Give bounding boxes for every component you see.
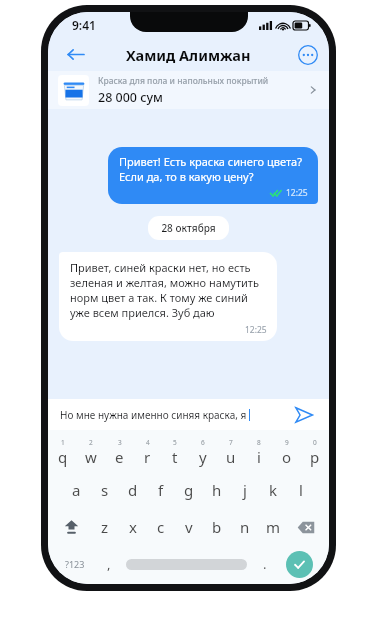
button[interactable]: d <box>119 471 147 508</box>
staticText: f <box>158 480 164 500</box>
button[interactable]: , <box>96 546 121 582</box>
staticText: 2 <box>89 438 93 447</box>
staticText: x <box>129 517 137 537</box>
button[interactable]: 28 октября <box>148 216 229 240</box>
button[interactable]: Enter <box>286 551 313 578</box>
staticText: h <box>212 480 222 500</box>
button[interactable]: s <box>91 471 119 508</box>
button[interactable]: 2 <box>77 434 105 471</box>
staticText: e <box>115 447 124 467</box>
button[interactable]: k <box>259 471 287 508</box>
staticText: w <box>85 447 97 467</box>
button[interactable]: 5 <box>161 434 189 471</box>
button[interactable]: m <box>259 508 287 546</box>
button[interactable]: j <box>231 471 259 508</box>
staticText: 7 <box>229 438 233 447</box>
staticText: Но мне нужна именно синяя краска, я <box>60 408 247 422</box>
button[interactable]: b <box>203 508 231 546</box>
staticText: s <box>101 480 109 500</box>
staticText: 12:25 <box>245 324 267 336</box>
staticText: Привет! Есть краска синего цвета? Если д… <box>119 154 302 184</box>
staticText: 28 000 сум <box>98 89 163 106</box>
button[interactable]: 8 <box>245 434 273 471</box>
button[interactable]: n <box>231 508 259 546</box>
button[interactable]: . <box>252 546 278 582</box>
staticText: n <box>240 517 250 537</box>
staticText: p <box>310 447 320 467</box>
staticText: k <box>269 480 278 500</box>
button[interactable]: Привет! Есть краска синего цвета? Если д… <box>108 147 318 204</box>
button[interactable]: Send <box>291 402 317 428</box>
button[interactable]: ?123 <box>54 546 96 582</box>
staticText: c <box>157 517 165 537</box>
staticText: u <box>226 447 236 467</box>
staticText: q <box>58 447 68 467</box>
button[interactable]: 9 <box>273 434 301 471</box>
staticText: . <box>263 555 267 573</box>
staticText: 1 <box>61 438 65 447</box>
staticText: r <box>144 447 151 467</box>
button[interactable]: 1 <box>48 434 77 471</box>
button[interactable]: c <box>147 508 175 546</box>
button[interactable]: z <box>91 508 119 546</box>
button[interactable]: l <box>287 471 315 508</box>
staticText: t <box>172 447 178 467</box>
staticText: z <box>101 517 109 537</box>
staticText: Привет, синей краски нет, но есть зелена… <box>70 260 267 320</box>
staticText: 8 <box>257 438 261 447</box>
staticText: j <box>243 480 247 500</box>
button[interactable] <box>121 546 252 582</box>
staticText: i <box>257 447 261 467</box>
staticText: 5 <box>173 438 177 447</box>
button[interactable]: Back <box>58 38 92 71</box>
staticText: 9:41 <box>72 17 96 33</box>
staticText: v <box>185 517 193 537</box>
staticText: 4 <box>146 438 150 447</box>
staticText: Хамид Алимжан <box>126 45 251 65</box>
staticText: b <box>212 517 222 537</box>
button[interactable]: 3 <box>105 434 133 471</box>
staticText: g <box>184 480 194 500</box>
button[interactable]: h <box>203 471 231 508</box>
button[interactable]: 6 <box>189 434 217 471</box>
staticText: m <box>266 517 281 537</box>
button[interactable]: Shift <box>52 508 91 546</box>
staticText: 6 <box>201 438 205 447</box>
button[interactable]: g <box>175 471 203 508</box>
button[interactable]: Backspace <box>287 508 325 546</box>
staticText: a <box>72 480 81 500</box>
button[interactable]: More options <box>297 44 319 66</box>
staticText: 12:25 <box>286 187 308 199</box>
button[interactable]: 4 <box>133 434 161 471</box>
button[interactable]: a <box>62 471 91 508</box>
button[interactable]: x <box>119 508 147 546</box>
button[interactable]: 7 <box>217 434 245 471</box>
staticText: 9 <box>285 438 289 447</box>
staticText: 28 октября <box>161 221 216 235</box>
staticText: d <box>128 480 138 500</box>
staticText: 0 <box>313 438 317 447</box>
button[interactable]: f <box>147 471 175 508</box>
button[interactable]: Краска для пола и напольных покрытий <box>48 71 329 109</box>
staticText: o <box>282 447 292 467</box>
button[interactable]: v <box>175 508 203 546</box>
staticText: Краска для пола и напольных покрытий <box>98 75 269 87</box>
button[interactable]: 0 <box>301 434 329 471</box>
staticText: l <box>299 480 303 500</box>
staticText: 3 <box>118 438 122 447</box>
button[interactable]: Привет, синей краски нет, но есть зелена… <box>59 252 277 341</box>
staticText: , <box>107 555 111 573</box>
staticText: ?123 <box>65 558 85 570</box>
staticText: y <box>199 447 207 467</box>
